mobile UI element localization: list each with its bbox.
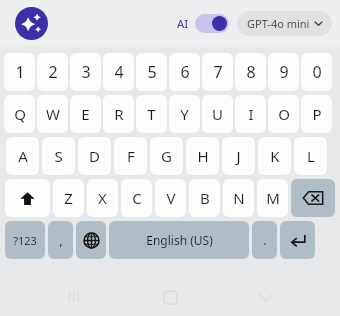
button[interactable]: J [222,137,255,175]
staticText: ?123 [13,233,37,248]
button[interactable]: I [235,95,266,133]
staticText: A [18,146,28,166]
staticText: D [89,146,100,166]
staticText: Y [180,104,189,124]
staticText: Z [64,188,73,208]
staticText: S [54,146,63,166]
staticText: 2 [48,61,58,83]
button[interactable]: M [257,179,288,217]
button[interactable]: 7 [202,53,233,91]
staticText: 9 [279,61,289,83]
button[interactable]: 8 [235,53,266,91]
staticText: N [233,188,245,208]
button[interactable]: Enter [280,221,315,259]
button[interactable]: D [78,137,111,175]
button[interactable]: English (US) [109,221,249,259]
button[interactable]: , [48,221,73,259]
staticText: AI [177,16,189,31]
button[interactable]: 2 [37,53,68,91]
staticText: X [98,188,107,208]
button[interactable]: 1 [4,53,35,91]
button[interactable]: F [114,137,147,175]
button[interactable]: O [268,95,299,133]
button[interactable]: GPT-4o mini [237,11,332,36]
button[interactable]: Change language [76,221,106,259]
staticText: W [46,104,60,124]
staticText: F [127,146,135,166]
staticText: U [212,104,223,124]
staticText: I [248,104,254,124]
staticText: 8 [246,61,256,83]
staticText: P [312,104,322,124]
staticText: J [236,146,241,166]
button[interactable]: G [150,137,183,175]
button[interactable]: X [87,179,118,217]
button[interactable]: Q [4,95,35,133]
staticText: C [132,188,142,208]
staticText: M [266,188,280,208]
button[interactable]: L [294,137,327,175]
button[interactable]: R [103,95,134,133]
button[interactable]: 0 [301,53,332,91]
button[interactable]: . [252,221,277,259]
button[interactable]: 5 [136,53,167,91]
button[interactable]: A [6,137,39,175]
staticText: B [200,188,210,208]
staticText: 7 [213,61,223,83]
button[interactable]: Shift [5,179,50,217]
staticText: 5 [147,61,157,83]
staticText: 1 [15,61,25,83]
button[interactable]: B [189,179,220,217]
staticText: R [114,104,124,124]
button[interactable]: 4 [103,53,134,91]
staticText: K [270,146,280,166]
button[interactable]: Backspace [291,179,335,217]
button[interactable]: AI assistant [15,7,48,40]
staticText: O [278,104,290,124]
button[interactable]: W [37,95,68,133]
staticText: T [147,104,156,124]
staticText: G [161,146,172,166]
button[interactable]: P [301,95,332,133]
staticText: V [166,188,176,208]
staticText: 4 [114,61,124,83]
staticText: 6 [180,61,190,83]
staticText: Q [14,104,26,124]
button[interactable]: Y [169,95,200,133]
button[interactable]: U [202,95,233,133]
button[interactable]: E [70,95,101,133]
staticText: . [263,231,267,249]
button[interactable]: C [121,179,152,217]
staticText: 0 [312,61,322,83]
button[interactable]: 6 [169,53,200,91]
button[interactable]: Z [53,179,84,217]
staticText: GPT-4o mini [247,16,310,31]
button[interactable]: 9 [268,53,299,91]
staticText: 3 [81,61,91,83]
staticText: H [197,146,209,166]
button[interactable]: AI toggle [195,14,229,33]
staticText: , [59,231,63,249]
button[interactable]: V [155,179,186,217]
button[interactable]: K [258,137,291,175]
button[interactable]: S [42,137,75,175]
staticText: E [81,104,90,124]
button[interactable]: N [223,179,254,217]
button[interactable]: ?123 [5,221,45,259]
button[interactable]: T [136,95,167,133]
staticText: L [307,146,315,166]
staticText: English (US) [146,232,213,248]
button[interactable]: 3 [70,53,101,91]
button[interactable]: H [186,137,219,175]
